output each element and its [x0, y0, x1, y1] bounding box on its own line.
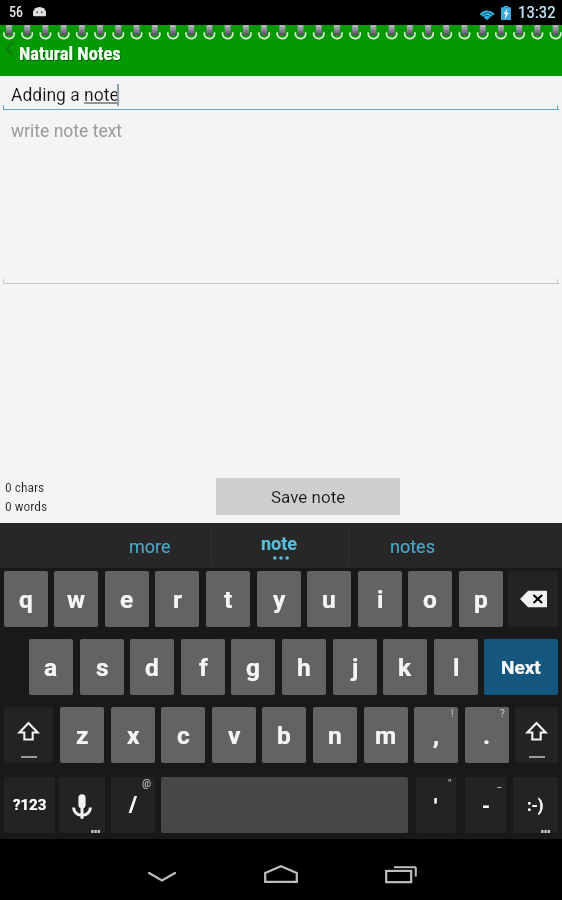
- staticText: more: [129, 536, 171, 557]
- button[interactable]: Home: [241, 846, 321, 900]
- button[interactable]: Back: [0, 34, 19, 62]
- staticText: n: [328, 721, 342, 750]
- button[interactable]: z: [60, 707, 104, 763]
- staticText: s: [96, 653, 109, 682]
- button[interactable]: q: [4, 571, 48, 627]
- staticText: ": [448, 778, 452, 790]
- button[interactable]: a: [29, 639, 73, 695]
- staticText: g: [246, 653, 260, 682]
- staticText: e: [120, 585, 134, 614]
- button[interactable]: c: [161, 707, 205, 763]
- staticText: x: [127, 721, 140, 750]
- button[interactable]: w: [54, 571, 98, 627]
- button[interactable]: i: [358, 571, 402, 627]
- staticText: 13:32: [518, 2, 556, 22]
- button[interactable]: x: [111, 707, 155, 763]
- staticText: w: [67, 585, 85, 614]
- staticText: 0 words: [5, 498, 48, 514]
- staticText: _: [497, 778, 502, 790]
- button[interactable]: j: [333, 639, 377, 695]
- staticText: Adding a note: [11, 85, 119, 106]
- staticText: -: [482, 794, 490, 817]
- button[interactable]: Emoji: [513, 777, 558, 833]
- staticText: 56: [9, 4, 23, 20]
- button[interactable]: Slash: [111, 777, 155, 833]
- staticText: h: [297, 653, 311, 682]
- button[interactable]: Symbols: [4, 777, 55, 833]
- staticText: b: [277, 721, 291, 750]
- button[interactable]: Recent apps: [361, 846, 441, 900]
- staticText: /: [129, 792, 138, 818]
- button[interactable]: note: [211, 523, 348, 568]
- staticText: v: [228, 721, 241, 750]
- staticText: ?123: [13, 796, 47, 814]
- button[interactable]: n: [313, 707, 357, 763]
- staticText: note: [261, 533, 298, 554]
- button[interactable]: e: [105, 571, 149, 627]
- button[interactable]: b: [262, 707, 306, 763]
- staticText: Next: [501, 656, 541, 678]
- staticText: ': [434, 794, 438, 817]
- button[interactable]: Save note: [216, 478, 400, 515]
- staticText: m: [375, 721, 397, 750]
- button[interactable]: Hide keyboard: [122, 849, 202, 900]
- staticText: c: [177, 721, 190, 750]
- button[interactable]: m: [364, 707, 408, 763]
- button[interactable]: l: [434, 639, 478, 695]
- button[interactable]: Voice input: [59, 777, 105, 833]
- button[interactable]: o: [408, 571, 452, 627]
- staticText: o: [423, 585, 437, 614]
- button[interactable]: h: [282, 639, 326, 695]
- button[interactable]: v: [212, 707, 256, 763]
- staticText: Natural Notes: [19, 43, 121, 65]
- staticText: z: [76, 721, 89, 750]
- staticText: ?: [500, 708, 505, 720]
- button[interactable]: Dash: [465, 777, 506, 833]
- staticText: ,: [433, 721, 440, 750]
- button[interactable]: p: [459, 571, 503, 627]
- staticText: p: [474, 585, 488, 614]
- staticText: 0 chars: [5, 479, 45, 495]
- staticText: y: [273, 585, 286, 614]
- staticText: r: [173, 585, 182, 614]
- button[interactable]: Apostrophe: [416, 777, 456, 833]
- button[interactable]: g: [231, 639, 275, 695]
- button[interactable]: r: [155, 571, 199, 627]
- button[interactable]: t: [206, 571, 250, 627]
- staticText: write note text: [11, 121, 123, 142]
- button[interactable]: Shift: [4, 707, 53, 763]
- staticText: u: [322, 585, 336, 614]
- button[interactable]: Backspace: [508, 571, 558, 627]
- staticText: Save note: [271, 487, 346, 507]
- button[interactable]: ,: [414, 707, 458, 763]
- button[interactable]: notes: [344, 523, 481, 568]
- staticText: f: [199, 653, 208, 682]
- staticText: .: [483, 721, 491, 750]
- staticText: q: [19, 585, 33, 614]
- button[interactable]: .: [465, 707, 509, 763]
- staticText: a: [44, 653, 58, 682]
- button[interactable]: u: [307, 571, 351, 627]
- staticText: j: [352, 653, 359, 682]
- button[interactable]: f: [181, 639, 225, 695]
- staticText: d: [145, 653, 159, 682]
- staticText: i: [377, 585, 384, 614]
- button[interactable]: Shift: [515, 707, 558, 763]
- button[interactable]: d: [130, 639, 174, 695]
- staticText: @: [142, 778, 151, 790]
- button[interactable]: Next: [484, 639, 558, 695]
- staticText: notes: [390, 536, 435, 557]
- staticText: l: [453, 653, 460, 682]
- button[interactable]: y: [257, 571, 301, 627]
- staticText: t: [224, 585, 233, 614]
- staticText: :-): [527, 796, 544, 815]
- staticText: Natural Notes: [20, 44, 122, 66]
- staticText: !: [451, 708, 454, 720]
- staticText: k: [398, 653, 412, 682]
- button[interactable]: k: [383, 639, 427, 695]
- button[interactable]: s: [80, 639, 124, 695]
- button[interactable]: more: [81, 523, 218, 568]
